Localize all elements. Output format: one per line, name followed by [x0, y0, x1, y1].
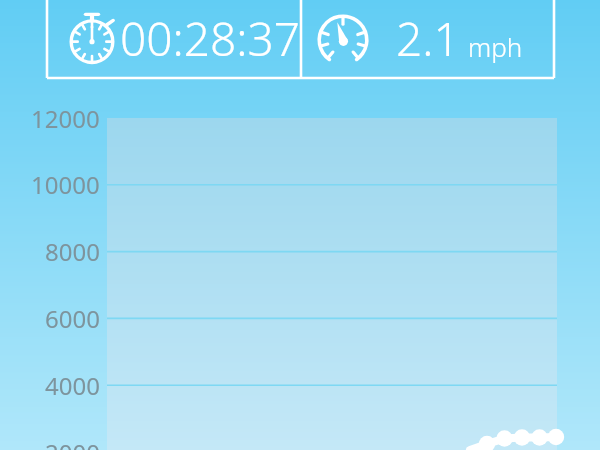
button[interactable]: Elapsed time 00:28:37 [47, 0, 301, 78]
button[interactable]: Current speed 2.1 mph [301, 0, 554, 78]
